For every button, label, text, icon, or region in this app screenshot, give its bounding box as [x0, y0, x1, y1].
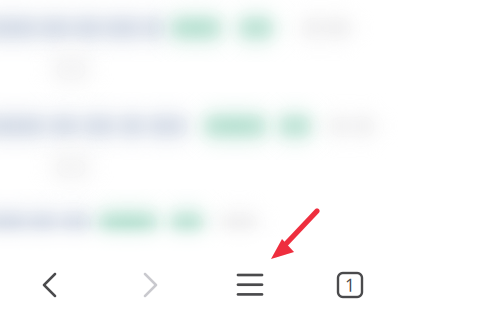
staticText: 1: [345, 273, 355, 296]
button[interactable]: Tabs: [300, 258, 400, 315]
button[interactable]: Back: [0, 258, 100, 315]
button[interactable]: Forward: [100, 258, 200, 315]
button[interactable]: Page settings: [200, 258, 300, 315]
